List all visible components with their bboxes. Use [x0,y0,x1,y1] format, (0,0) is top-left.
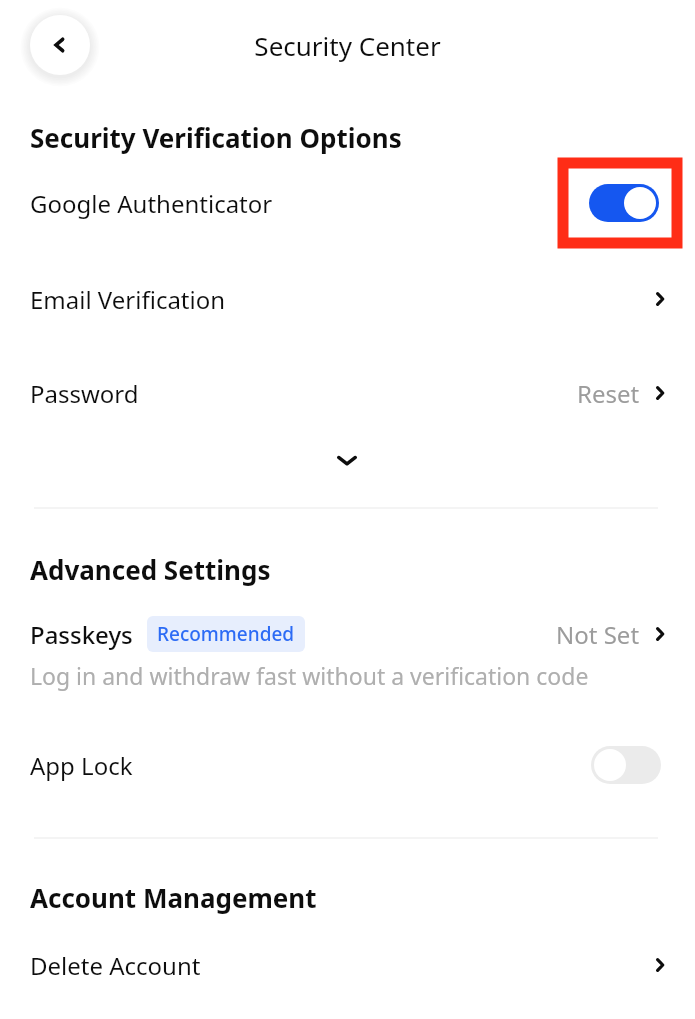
staticText: Passkeys [30,618,133,651]
button[interactable]: Password [0,364,695,422]
button[interactable]: Passkeys [0,608,695,696]
staticText: Security Verification Options [30,120,402,155]
staticText: Reset [577,377,640,410]
staticText: App Lock [30,749,133,782]
staticText: Email Verification [30,283,226,316]
staticText: Google Authenticator [30,187,273,220]
staticText: Not Set [556,618,640,651]
button[interactable]: Back [27,12,93,78]
button[interactable]: Email Verification [0,270,695,328]
staticText: Security Center [0,28,695,63]
button[interactable]: Expand [312,434,382,486]
staticText: Account Management [30,880,317,915]
button[interactable] [589,184,659,222]
staticText: Log in and withdraw fast without a verif… [30,660,589,691]
button[interactable] [591,746,661,784]
staticText: Recommended [157,621,295,647]
button[interactable]: Delete Account [0,936,695,994]
button[interactable]: Google Authenticator [0,170,695,236]
staticText: Advanced Settings [30,552,271,587]
staticText: Password [30,377,139,410]
button[interactable]: App Lock [0,732,695,798]
staticText: Delete Account [30,949,201,982]
